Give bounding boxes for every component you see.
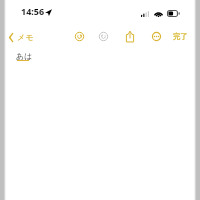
staticText: 完了 xyxy=(173,32,188,41)
button[interactable]: Redo xyxy=(98,31,109,42)
staticText: 14:56 xyxy=(21,5,45,17)
button[interactable]: Undo xyxy=(74,31,85,42)
button[interactable]: More xyxy=(151,31,162,42)
button[interactable]: Share xyxy=(125,30,135,43)
button[interactable]: 完了 xyxy=(173,32,188,41)
staticText: あは xyxy=(16,51,33,61)
staticText: メモ xyxy=(17,32,34,42)
button[interactable]: メモ xyxy=(9,32,34,42)
